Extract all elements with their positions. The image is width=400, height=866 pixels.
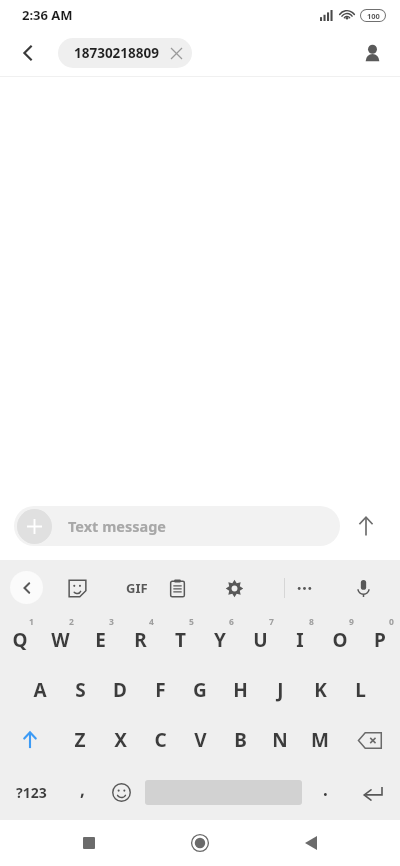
button[interactable]: GIF [119, 570, 155, 606]
button[interactable]: R [120, 615, 160, 665]
staticText: L [355, 677, 366, 703]
staticText: C [154, 727, 167, 753]
button[interactable]: 18730218809 [58, 38, 192, 68]
button[interactable]: Clipboard [159, 570, 195, 606]
button[interactable]: Voice input [345, 570, 381, 606]
button[interactable]: L [340, 665, 380, 715]
staticText: 6 [229, 616, 234, 628]
button[interactable]: D [100, 665, 140, 715]
button[interactable]: M [300, 715, 340, 765]
button[interactable]: J [260, 665, 300, 715]
button[interactable]: P [360, 615, 400, 665]
button[interactable]: , [63, 765, 102, 820]
button[interactable]: G [180, 665, 220, 715]
staticText: A [33, 677, 47, 703]
staticText: F [155, 677, 166, 703]
button[interactable]: I [280, 615, 320, 665]
button[interactable]: Stickers [59, 570, 95, 606]
button[interactable]: Emoji [102, 765, 141, 820]
staticText: U [253, 627, 268, 653]
button[interactable]: Add attachment [17, 509, 52, 544]
button[interactable]: O [320, 615, 360, 665]
staticText: R [134, 627, 147, 653]
button[interactable]: Shift [0, 715, 60, 765]
staticText: G [193, 677, 207, 703]
staticText: X [114, 727, 127, 753]
staticText: B [234, 727, 247, 753]
button[interactable]: Back [10, 35, 46, 71]
staticText: K [314, 677, 327, 703]
staticText: I [296, 627, 304, 653]
staticText: Text message [68, 516, 167, 536]
button[interactable]: Z [60, 715, 100, 765]
staticText: J [277, 677, 284, 703]
staticText: GIF [126, 579, 148, 597]
staticText: H [233, 677, 248, 703]
staticText: D [113, 677, 127, 703]
button[interactable]: Settings [216, 570, 252, 606]
button[interactable]: V [180, 715, 220, 765]
button[interactable]: B [220, 715, 260, 765]
button[interactable]: Y [200, 615, 240, 665]
staticText: 7 [269, 616, 274, 628]
button[interactable]: H [220, 665, 260, 715]
staticText: 0 [389, 616, 394, 628]
staticText: 2 [69, 616, 74, 628]
button[interactable]: Backspace [340, 715, 400, 765]
staticText: 5 [189, 616, 194, 628]
button[interactable]: Send [346, 506, 386, 546]
button[interactable]: X [100, 715, 140, 765]
staticText: M [311, 727, 329, 753]
staticText: V [194, 727, 207, 753]
staticText: Q [12, 627, 28, 653]
button[interactable]: C [140, 715, 180, 765]
staticText: 9 [349, 616, 354, 628]
button[interactable]: S [60, 665, 100, 715]
button[interactable]: Home [178, 821, 222, 865]
staticText: N [272, 727, 288, 753]
staticText: 1 [29, 616, 34, 628]
staticText: P [374, 627, 386, 653]
staticText: O [332, 627, 348, 653]
staticText: , [80, 778, 85, 801]
button[interactable]: Q [0, 615, 40, 665]
staticText: W [51, 627, 70, 653]
button[interactable]: Collapse toolbar [10, 571, 43, 604]
button[interactable]: E [80, 615, 120, 665]
staticText: 100 [367, 11, 380, 21]
button[interactable]: Add attachment [14, 506, 340, 546]
staticText: 2:36 AM [22, 6, 73, 24]
button[interactable]: N [260, 715, 300, 765]
button[interactable]: T [160, 615, 200, 665]
button[interactable]: More options [286, 570, 322, 606]
button[interactable]: Enter [345, 765, 400, 820]
staticText: S [75, 677, 86, 703]
button[interactable]: Recents [67, 821, 111, 865]
button[interactable]: F [140, 665, 180, 715]
button[interactable]: K [300, 665, 340, 715]
button[interactable]: Contacts [354, 35, 390, 71]
button[interactable]: W [40, 615, 80, 665]
staticText: Y [214, 627, 226, 653]
button[interactable]: . [306, 765, 345, 820]
staticText: ?123 [16, 783, 47, 802]
staticText: 18730218809 [74, 44, 159, 62]
staticText: T [175, 627, 186, 653]
button[interactable]: ?123 [0, 765, 63, 820]
button[interactable]: U [240, 615, 280, 665]
staticText: Z [74, 727, 86, 753]
staticText: . [323, 778, 328, 801]
staticText: E [95, 627, 106, 653]
button[interactable]: Remove recipient [171, 48, 182, 59]
staticText: 3 [109, 616, 114, 628]
button[interactable]: A [20, 665, 60, 715]
button[interactable]: Back [289, 821, 333, 865]
staticText: 4 [149, 616, 154, 628]
staticText: 8 [309, 616, 314, 628]
